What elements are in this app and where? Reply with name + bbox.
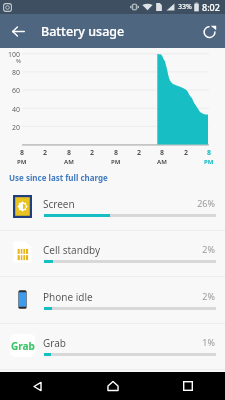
staticText: 1% [180,336,215,348]
staticText: 8 [114,148,119,158]
staticText: 8 [207,148,212,158]
staticText: 2% [180,243,215,255]
staticText: PM [111,158,121,166]
staticText: Grab [43,336,66,350]
button[interactable]: Screen [0,185,225,231]
staticText: 20 [0,123,20,133]
staticText: Phone idle [43,290,93,304]
button[interactable]: Home [75,372,150,400]
staticText: Screen [43,197,75,211]
button[interactable]: Recent apps [150,372,225,400]
staticText: AM [157,158,167,166]
staticText: 2 [184,148,189,158]
staticText: % [16,57,21,65]
staticText: 40 [0,105,20,115]
staticText: 80 [0,68,20,78]
button[interactable]: Phone idle [0,278,225,324]
staticText: 2 [90,148,95,158]
staticText: 2% [180,290,215,302]
staticText: PM [17,158,27,166]
staticText: AM [64,158,74,166]
staticText: 60 [0,86,20,96]
staticText: PM [204,158,214,166]
staticText: 8 [20,148,25,158]
button[interactable]: Back [0,372,75,400]
staticText: Use since last full charge [9,172,108,183]
staticText: Grab [11,339,35,353]
staticText: 8 [67,148,72,158]
staticText: Cell standby [43,243,101,257]
staticText: 8 [160,148,165,158]
staticText: Battery usage [41,23,125,40]
staticText: 2 [43,148,48,158]
staticText: 2 [137,148,142,158]
button[interactable]: Refresh [193,15,225,47]
staticText: 26% [180,197,215,209]
staticText: 33% [178,2,192,12]
staticText: 8:02 [202,1,220,13]
staticText: 100 [0,50,20,60]
button[interactable]: Cell standby [0,231,225,277]
button[interactable]: Grab [0,324,225,370]
button[interactable]: Back [2,15,34,47]
